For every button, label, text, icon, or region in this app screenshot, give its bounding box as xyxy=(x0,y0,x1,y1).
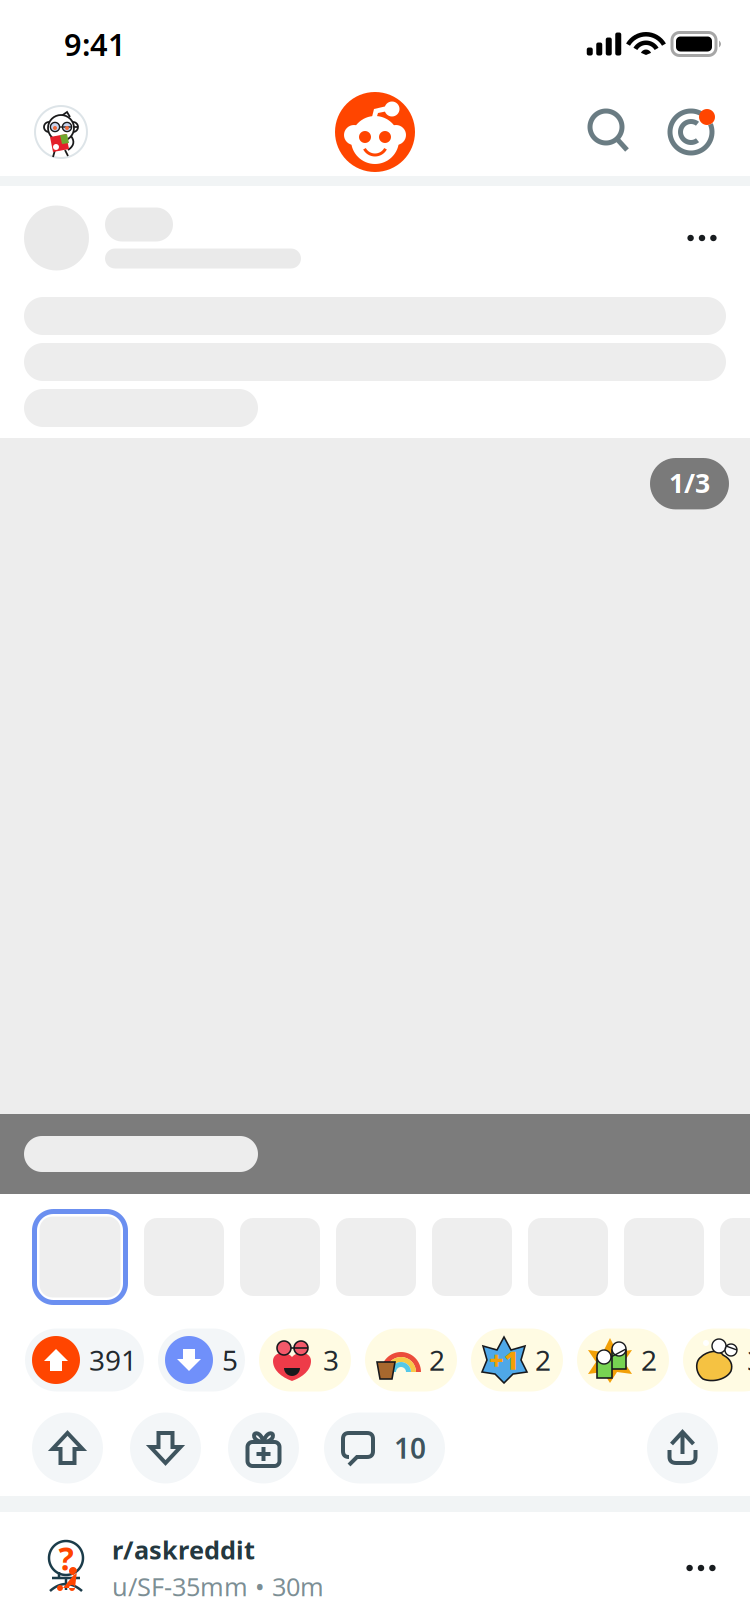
button[interactable]: 3 xyxy=(259,1328,351,1391)
staticText: r/askreddit xyxy=(112,1533,255,1566)
button[interactable]: Share xyxy=(647,1412,718,1483)
staticText: 9:41 xyxy=(64,24,126,64)
staticText: 2 xyxy=(641,1341,657,1379)
staticText: ? xyxy=(58,1537,73,1579)
button[interactable]: 391 xyxy=(25,1328,144,1391)
button[interactable]: 2 xyxy=(577,1328,669,1391)
staticText: 10 xyxy=(394,1429,426,1467)
staticText: u/SF-35mm • 30m xyxy=(112,1569,324,1603)
button[interactable]: Profile xyxy=(25,96,97,168)
button[interactable]: Reddit Home xyxy=(335,92,415,172)
staticText: 5 xyxy=(222,1341,238,1379)
button[interactable]: More options xyxy=(670,1528,732,1608)
staticText: 3 xyxy=(323,1341,339,1379)
button[interactable]: Chat xyxy=(656,96,728,168)
button[interactable]: Downvote xyxy=(130,1412,201,1483)
button[interactable]: 2 xyxy=(365,1328,457,1391)
staticText: 1/3 xyxy=(669,465,710,500)
staticText: 2 xyxy=(535,1341,551,1379)
button[interactable]: More options xyxy=(671,205,733,271)
button[interactable]: +1 xyxy=(471,1328,563,1391)
button[interactable]: 10 xyxy=(324,1412,445,1483)
staticText: 2 xyxy=(429,1341,445,1379)
button[interactable]: Upvote xyxy=(32,1412,103,1483)
button[interactable]: Award xyxy=(228,1412,299,1483)
button[interactable]: Image 1 xyxy=(32,1209,128,1305)
staticText: 3 xyxy=(747,1341,750,1379)
button[interactable]: 3 xyxy=(683,1328,750,1391)
staticText: +1 xyxy=(489,1343,519,1377)
button[interactable]: 5 xyxy=(158,1328,245,1391)
button[interactable]: Search xyxy=(572,96,644,168)
staticText: 391 xyxy=(89,1341,137,1379)
